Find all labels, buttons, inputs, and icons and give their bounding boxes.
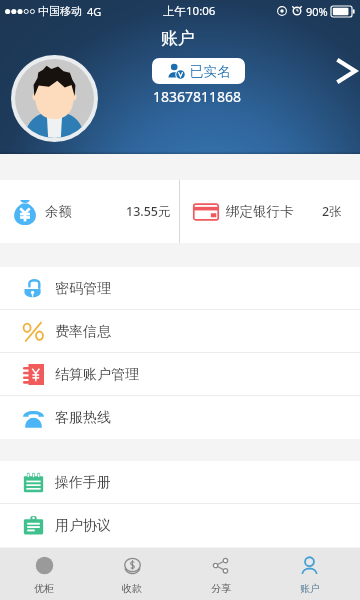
button[interactable]: 收款	[88, 548, 176, 600]
staticText: 2张	[322, 203, 342, 220]
button[interactable]: 绑定银行卡	[180, 180, 360, 243]
staticText: 分享	[211, 582, 231, 595]
staticText: 收款	[122, 582, 142, 595]
button[interactable]: 优柜	[0, 548, 88, 600]
button[interactable]: 分享	[176, 548, 265, 600]
staticText: 结算账户管理	[55, 366, 139, 384]
button[interactable]: Account details	[328, 54, 360, 88]
staticText: 上午10:06	[163, 3, 216, 19]
button[interactable]: 余额	[0, 180, 179, 243]
button[interactable]: Profile photo	[11, 55, 98, 142]
button[interactable]: 用户协议	[0, 504, 360, 547]
button[interactable]: 结算账户管理	[0, 353, 360, 396]
staticText: 客服热线	[55, 409, 111, 427]
staticText: 费率信息	[55, 323, 111, 341]
button[interactable]: 已实名	[152, 58, 245, 84]
staticText: 绑定银行卡	[226, 203, 294, 220]
staticText: 密码管理	[55, 280, 111, 298]
staticText: 优柜	[34, 582, 54, 595]
button[interactable]: 账户	[265, 548, 354, 600]
staticText: 账户	[300, 582, 320, 595]
staticText: 用户协议	[55, 517, 111, 535]
button[interactable]: 费率信息	[0, 310, 360, 353]
staticText: 账户	[161, 28, 195, 49]
staticText: 13.55元	[126, 203, 171, 220]
staticText: 操作手册	[55, 474, 111, 492]
staticText: 已实名	[190, 63, 231, 80]
staticText: 中国移动	[38, 4, 82, 18]
button[interactable]: 操作手册	[0, 461, 360, 504]
staticText: 90%	[306, 4, 328, 19]
staticText: 余额	[45, 203, 72, 220]
staticText: 4G	[87, 4, 102, 19]
staticText: 18367811868	[153, 87, 242, 106]
button[interactable]: 客服热线	[0, 396, 360, 439]
button[interactable]: 密码管理	[0, 267, 360, 310]
